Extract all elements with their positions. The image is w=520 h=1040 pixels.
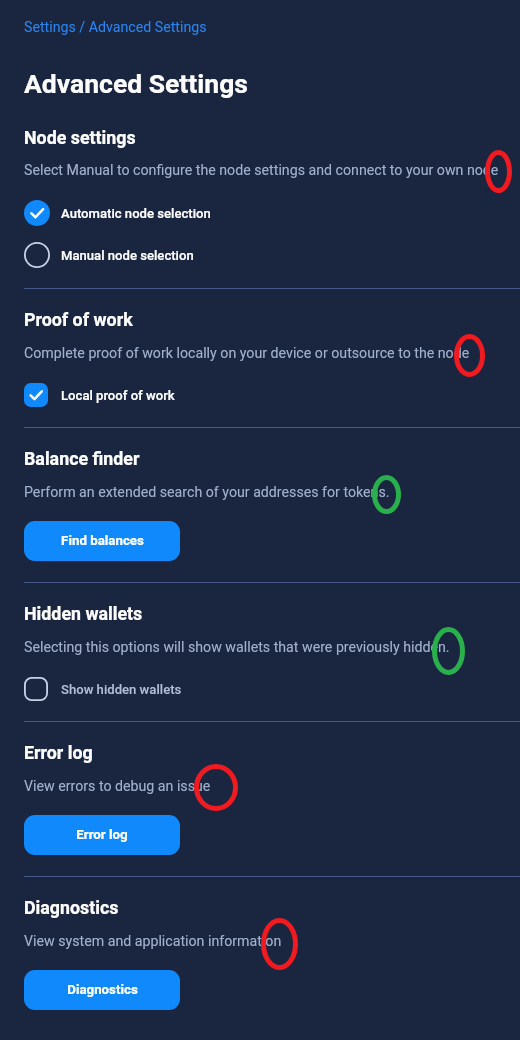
button[interactable]: [18, 375, 298, 415]
staticText: Complete proof of work locally on your d…: [24, 345, 470, 362]
button[interactable]: Find balances: [24, 521, 180, 561]
staticText: Automatic node selection: [61, 206, 211, 221]
staticText: Settings / Advanced Settings: [24, 19, 207, 36]
staticText: Show hidden wallets: [61, 682, 182, 697]
staticText: View system and application information: [24, 933, 282, 950]
button[interactable]: Diagnostics: [24, 970, 180, 1010]
staticText: View errors to debug an issue: [24, 778, 211, 795]
staticText: Diagnostics: [67, 982, 138, 998]
staticText: Local proof of work: [61, 388, 175, 403]
staticText: Error log: [76, 827, 128, 843]
staticText: Proof of work: [24, 309, 133, 330]
staticText: Error log: [24, 742, 93, 763]
button[interactable]: [18, 192, 298, 234]
staticText: Hidden wallets: [24, 603, 143, 624]
staticText: Selecting this options will show wallets…: [24, 639, 450, 656]
button[interactable]: [18, 234, 298, 276]
staticText: Perform an extended search of your addre…: [24, 484, 390, 501]
staticText: Diagnostics: [24, 897, 119, 918]
staticText: Find balances: [61, 533, 144, 549]
staticText: Select Manual to configure the node sett…: [24, 162, 499, 179]
button[interactable]: Error log: [24, 815, 180, 855]
staticText: Advanced Settings: [24, 68, 248, 99]
staticText: Node settings: [24, 127, 136, 148]
staticText: Balance finder: [24, 448, 140, 469]
staticText: Manual node selection: [61, 248, 194, 263]
button[interactable]: [18, 669, 298, 709]
